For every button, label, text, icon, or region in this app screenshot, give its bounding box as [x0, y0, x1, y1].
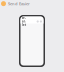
staticText: Wallet — [22, 16, 26, 27]
staticText: Send Easier — [8, 1, 30, 6]
